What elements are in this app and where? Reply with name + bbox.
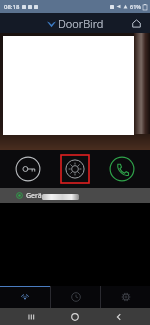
staticText: 61% (130, 3, 141, 10)
staticText: Gerä (26, 191, 42, 201)
button[interactable]: Home (128, 15, 144, 31)
button[interactable]: Settings (101, 286, 150, 308)
button[interactable]: Recent apps (20, 308, 44, 325)
button[interactable]: Home (63, 308, 87, 325)
button[interactable]: Open door (14, 155, 42, 183)
button[interactable]: Light (61, 155, 89, 183)
button[interactable]: Back (107, 308, 131, 325)
staticText: DoorBird (58, 16, 104, 31)
staticText: 08:18 (4, 3, 20, 11)
button[interactable]: Gerä (0, 188, 150, 203)
button[interactable]: History (51, 286, 100, 308)
button[interactable]: Answer call (108, 155, 136, 183)
button[interactable]: Live (0, 286, 50, 308)
